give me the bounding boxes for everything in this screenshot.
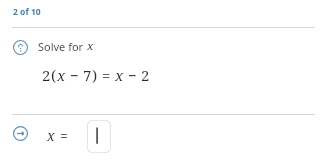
staticText: x [115,65,124,85]
staticText: 2 [42,65,51,85]
button[interactable] [87,120,111,153]
staticText: = [60,126,68,145]
staticText: = [98,65,115,85]
staticText: 2 [141,65,150,85]
staticText: − [124,65,141,85]
button[interactable]: Submit answer [13,126,28,141]
staticText: ( [51,65,57,85]
staticText: 2 of 10 [13,6,41,18]
staticText: − [66,65,83,85]
button[interactable]: Hint [13,40,28,55]
staticText: 7 [83,65,92,85]
staticText: x [57,65,66,85]
staticText: x [47,126,55,145]
staticText: x [87,38,94,54]
button[interactable]: 2 of 10 [12,5,42,19]
staticText: Solve for [38,39,87,54]
staticText: ) [92,65,98,85]
